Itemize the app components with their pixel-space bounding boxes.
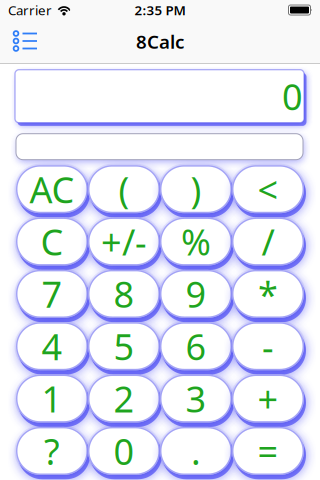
button[interactable]: 9 bbox=[160, 270, 232, 318]
staticText: 8 bbox=[113, 270, 134, 318]
button[interactable]: / bbox=[232, 217, 304, 265]
button[interactable]: 8 bbox=[88, 270, 160, 318]
staticText: 8Calc bbox=[136, 29, 184, 54]
staticText: 9 bbox=[185, 270, 206, 318]
staticText: - bbox=[262, 322, 274, 370]
button[interactable]: 3 bbox=[160, 375, 232, 423]
staticText: AC bbox=[29, 165, 74, 213]
button[interactable]: 7 bbox=[16, 270, 88, 318]
button[interactable]: = bbox=[232, 427, 304, 475]
staticText: ( bbox=[118, 165, 129, 213]
button[interactable]: . bbox=[160, 427, 232, 475]
staticText: / bbox=[261, 218, 274, 265]
staticText: . bbox=[191, 427, 201, 475]
staticText: % bbox=[181, 218, 211, 265]
button[interactable]: - bbox=[232, 322, 304, 370]
staticText: 3 bbox=[185, 375, 206, 422]
staticText: ) bbox=[190, 165, 201, 213]
staticText: 2:35 PM bbox=[134, 1, 185, 19]
button[interactable]: 0 bbox=[88, 427, 160, 475]
button[interactable]: ( bbox=[88, 165, 160, 213]
staticText: 7 bbox=[41, 270, 62, 318]
button[interactable]: +/- bbox=[88, 217, 160, 265]
button[interactable]: % bbox=[160, 217, 232, 265]
button[interactable]: + bbox=[232, 375, 304, 423]
button[interactable]: ) bbox=[160, 165, 232, 213]
staticText: +/- bbox=[101, 218, 147, 265]
staticText: 5 bbox=[113, 322, 134, 370]
staticText: + bbox=[257, 375, 278, 422]
staticText: ? bbox=[44, 427, 60, 475]
button[interactable]: Menu bbox=[0, 20, 38, 62]
staticText: * bbox=[258, 270, 278, 318]
staticText: 0 bbox=[113, 427, 134, 475]
staticText: 1 bbox=[41, 375, 62, 422]
button[interactable]: 4 bbox=[16, 322, 88, 370]
staticText: C bbox=[40, 218, 63, 265]
button[interactable]: 6 bbox=[160, 322, 232, 370]
staticText: 0 bbox=[282, 72, 303, 120]
staticText: < bbox=[257, 165, 278, 213]
button[interactable]: C bbox=[16, 217, 88, 265]
staticText: = bbox=[257, 427, 278, 475]
button[interactable]: 5 bbox=[88, 322, 160, 370]
staticText: 2 bbox=[113, 375, 134, 422]
staticText: Carrier bbox=[8, 1, 52, 19]
button[interactable]: 2 bbox=[88, 375, 160, 423]
button[interactable]: 1 bbox=[16, 375, 88, 423]
button[interactable]: < bbox=[232, 165, 304, 213]
staticText: 4 bbox=[41, 322, 62, 370]
button[interactable]: ? bbox=[16, 427, 88, 475]
button[interactable]: * bbox=[232, 270, 304, 318]
button[interactable]: AC bbox=[16, 165, 88, 213]
staticText: 6 bbox=[185, 322, 206, 370]
